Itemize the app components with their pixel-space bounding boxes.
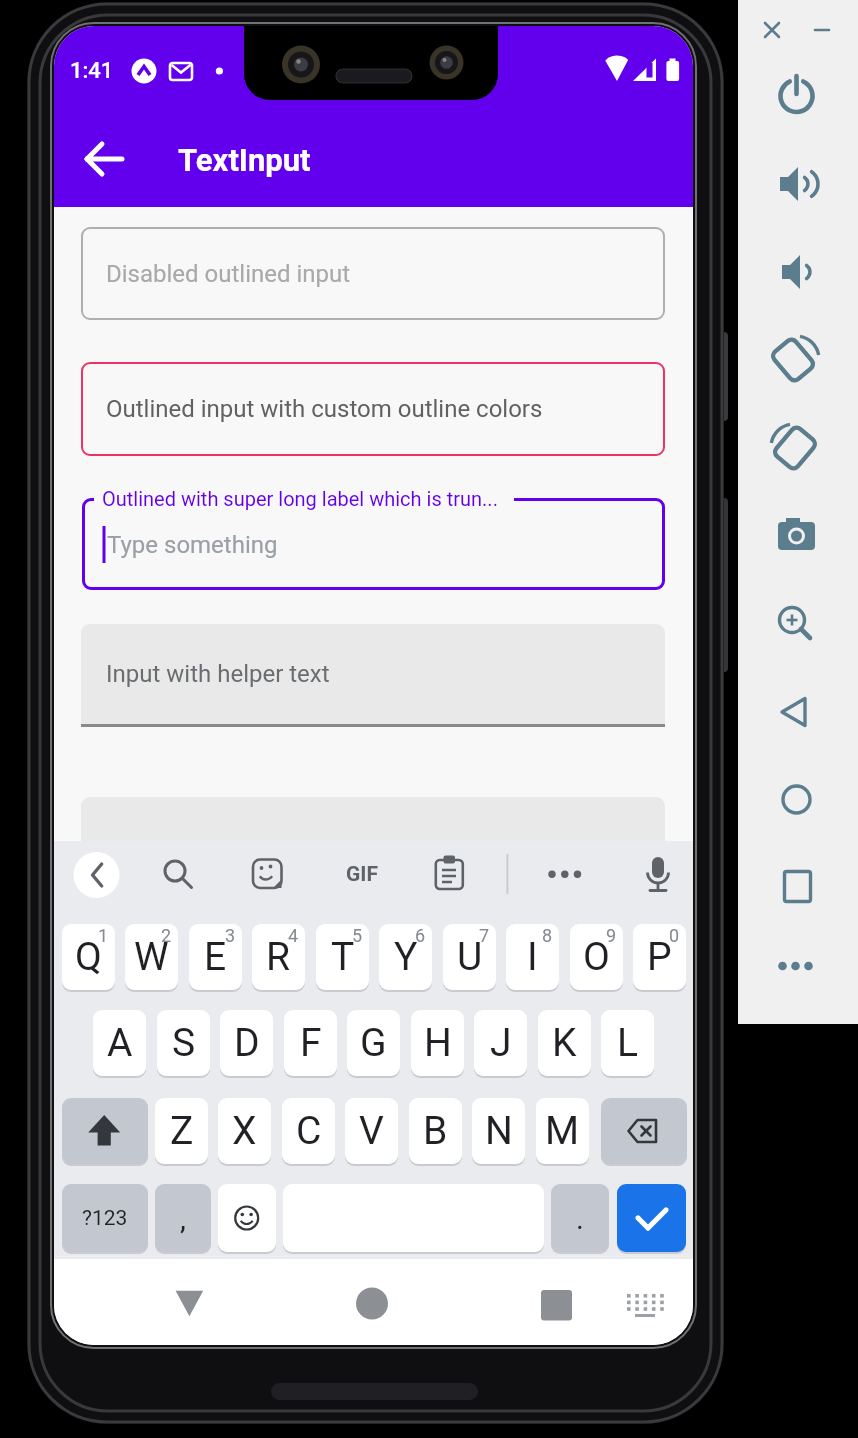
button[interactable] — [244, 848, 290, 894]
staticText: 1 — [98, 925, 109, 946]
button[interactable]: Y — [379, 924, 432, 990]
button[interactable]: K — [538, 1010, 591, 1076]
button[interactable] — [81, 624, 665, 724]
button[interactable] — [760, 18, 784, 42]
button[interactable] — [772, 248, 820, 296]
staticText: 4 — [288, 925, 299, 946]
staticText: 1:41 — [70, 58, 114, 84]
staticText: J — [490, 1020, 512, 1066]
button[interactable] — [772, 776, 820, 824]
button[interactable]: I — [506, 924, 559, 990]
button[interactable]: B — [409, 1098, 462, 1164]
staticText: 8 — [542, 925, 553, 946]
button[interactable]: P — [633, 924, 686, 990]
button[interactable] — [772, 72, 820, 120]
staticText: Input with helper text — [106, 660, 330, 688]
button[interactable]: D — [220, 1010, 273, 1076]
button[interactable] — [165, 1279, 213, 1327]
button[interactable] — [601, 1098, 687, 1164]
button[interactable]: N — [472, 1098, 525, 1164]
button[interactable] — [772, 336, 820, 384]
button[interactable] — [621, 1279, 669, 1327]
staticText: 6 — [415, 925, 426, 946]
button[interactable]: J — [474, 1010, 527, 1076]
staticText: U — [457, 934, 483, 980]
staticText: G — [360, 1020, 387, 1066]
staticText: 5 — [352, 925, 363, 946]
button[interactable] — [532, 1279, 580, 1327]
staticText: M — [545, 1108, 580, 1154]
staticText: A — [107, 1020, 133, 1066]
button[interactable] — [772, 160, 820, 208]
button[interactable]: E — [189, 924, 242, 990]
button[interactable] — [772, 864, 820, 912]
button[interactable]: H — [411, 1010, 464, 1076]
button[interactable]: ?123 — [62, 1184, 148, 1252]
button[interactable]: T — [316, 924, 369, 990]
button[interactable] — [810, 18, 834, 42]
button[interactable]: R — [252, 924, 305, 990]
staticText: Q — [75, 934, 102, 980]
button[interactable]: L — [601, 1010, 654, 1076]
staticText: 0 — [669, 925, 680, 946]
button[interactable] — [426, 848, 472, 894]
staticText: R — [266, 934, 291, 980]
button[interactable] — [81, 362, 665, 456]
button[interactable] — [81, 227, 665, 320]
button[interactable] — [617, 1184, 686, 1252]
button[interactable]: V — [345, 1098, 398, 1164]
button[interactable]: , — [155, 1184, 211, 1252]
staticText: N — [485, 1108, 513, 1154]
button[interactable] — [152, 848, 198, 894]
staticText: . — [576, 1201, 584, 1236]
button[interactable]: Z — [155, 1098, 208, 1164]
button[interactable]: X — [218, 1098, 271, 1164]
button[interactable]: M — [536, 1098, 589, 1164]
button[interactable]: O — [570, 924, 623, 990]
staticText: P — [647, 934, 672, 980]
staticText: S — [172, 1020, 196, 1066]
button[interactable] — [348, 1279, 396, 1327]
button[interactable]: S — [157, 1010, 210, 1076]
staticText: T — [331, 934, 355, 980]
staticText: D — [234, 1020, 260, 1066]
button[interactable] — [772, 600, 820, 648]
staticText: Y — [394, 934, 418, 980]
staticText: I — [527, 934, 538, 980]
button[interactable]: Q — [62, 924, 115, 990]
staticText: L — [617, 1020, 639, 1066]
button[interactable]: F — [284, 1010, 337, 1076]
staticText: O — [583, 934, 610, 980]
button[interactable]: W — [125, 924, 178, 990]
staticText: TextInput — [178, 142, 311, 178]
staticText: V — [359, 1108, 384, 1154]
staticText: H — [424, 1020, 452, 1066]
button[interactable] — [772, 512, 820, 560]
button[interactable] — [82, 498, 665, 590]
button[interactable]: G — [347, 1010, 400, 1076]
button[interactable] — [772, 688, 820, 736]
button[interactable]: A — [93, 1010, 146, 1076]
button[interactable]: . — [551, 1184, 609, 1252]
button[interactable] — [542, 848, 588, 894]
button[interactable] — [772, 424, 820, 472]
staticText: F — [300, 1020, 322, 1066]
staticText: 7 — [479, 925, 490, 946]
button[interactable] — [62, 1098, 148, 1164]
staticText: Z — [170, 1108, 194, 1154]
staticText: B — [423, 1108, 448, 1154]
staticText: E — [204, 934, 227, 980]
button[interactable] — [635, 848, 681, 894]
staticText: X — [232, 1108, 257, 1154]
button[interactable]: C — [282, 1098, 335, 1164]
staticText: 2 — [161, 925, 172, 946]
button[interactable]: U — [443, 924, 496, 990]
button[interactable] — [218, 1184, 276, 1252]
staticText: C — [296, 1108, 322, 1154]
button[interactable] — [772, 942, 820, 990]
button[interactable] — [338, 848, 384, 894]
button[interactable] — [73, 852, 119, 898]
button[interactable] — [80, 135, 128, 183]
